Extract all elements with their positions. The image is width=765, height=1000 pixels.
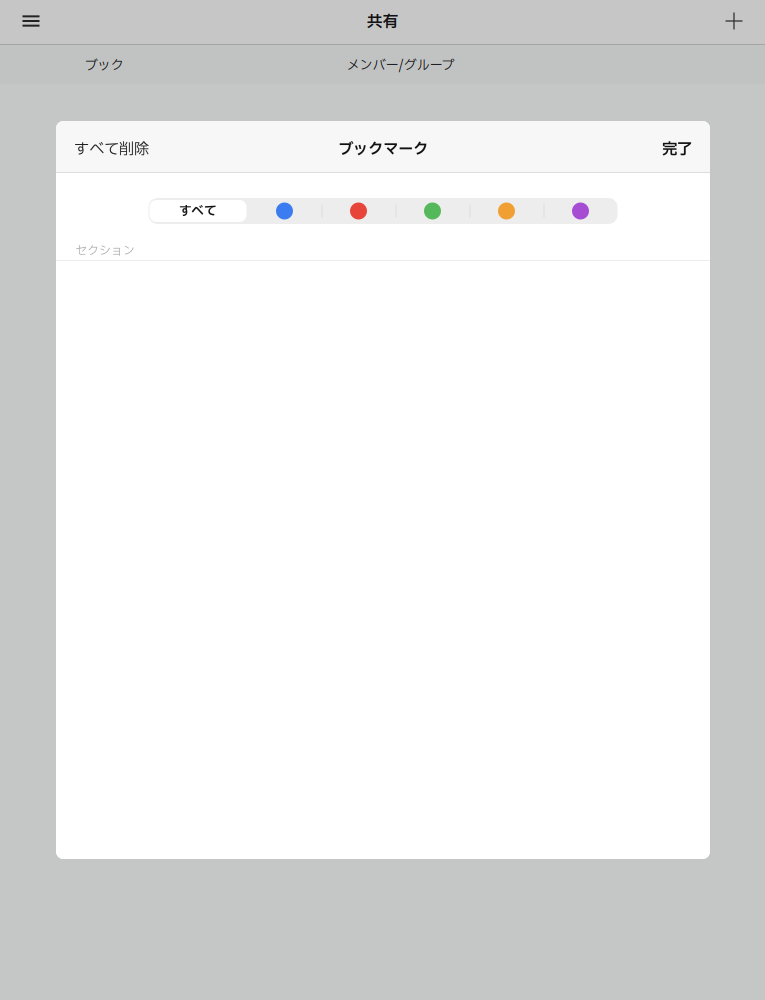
button[interactable]: Menu bbox=[9, 0, 53, 44]
button[interactable]: Purple bbox=[543, 198, 617, 224]
staticText: ブックマーク bbox=[338, 138, 428, 161]
staticText: 共有 bbox=[366, 10, 398, 34]
staticText: 完了 bbox=[662, 138, 692, 161]
button[interactable]: 完了 bbox=[662, 127, 692, 166]
button[interactable]: Add bbox=[712, 0, 756, 44]
button[interactable]: メンバー/グループ bbox=[208, 45, 593, 84]
button[interactable]: Red bbox=[321, 198, 395, 224]
button[interactable]: すべて bbox=[149, 200, 246, 222]
staticText: すべて削除 bbox=[74, 138, 149, 161]
button[interactable]: Blue bbox=[247, 198, 321, 224]
staticText: メンバー/グループ bbox=[346, 55, 454, 75]
staticText: すべて bbox=[179, 201, 217, 220]
button[interactable]: すべて削除 bbox=[74, 127, 149, 166]
button[interactable]: Green bbox=[395, 198, 469, 224]
staticText: セクション bbox=[75, 242, 135, 260]
staticText: ブック bbox=[84, 55, 123, 75]
button[interactable]: Orange bbox=[469, 198, 543, 224]
button[interactable]: ブック bbox=[0, 45, 208, 84]
